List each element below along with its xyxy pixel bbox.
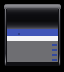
button[interactable] xyxy=(7,47,58,52)
button[interactable] xyxy=(7,42,58,47)
button[interactable] xyxy=(7,29,58,36)
button[interactable] xyxy=(7,57,58,62)
button[interactable] xyxy=(7,8,58,29)
button[interactable] xyxy=(7,52,58,57)
